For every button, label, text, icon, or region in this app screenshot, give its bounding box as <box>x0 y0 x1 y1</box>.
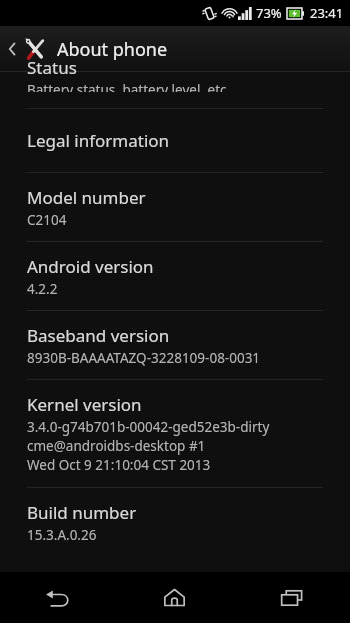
button[interactable]: Model number <box>0 173 350 241</box>
staticText: 15.3.A.0.26 <box>27 526 97 544</box>
other: Signal <box>238 7 252 20</box>
staticText: 3.4.0-g74b701b-00042-ged52e3b-dirty <box>27 418 270 436</box>
button[interactable]: Up, About phone <box>0 26 350 72</box>
button[interactable]: Back <box>0 572 116 623</box>
staticText: Kernel version <box>27 393 142 416</box>
button[interactable]: Kernel version <box>0 380 350 487</box>
button[interactable]: Status <box>0 72 350 108</box>
staticText: Battery status, battery level, etc. <box>27 81 231 92</box>
other: Wi-Fi <box>222 6 237 20</box>
other: Battery charging <box>287 8 304 19</box>
staticText: Wed Oct 9 21:10:04 CST 2013 <box>27 456 211 474</box>
staticText: About phone <box>57 37 168 62</box>
staticText: Status <box>27 56 77 79</box>
staticText: C2104 <box>27 211 67 229</box>
button[interactable]: Baseband version <box>0 311 350 379</box>
staticText: 23:41 <box>310 4 344 22</box>
staticText: Android version <box>27 255 154 278</box>
staticText: 8930B-BAAAATAZQ-3228109-08-0031 <box>27 349 261 367</box>
staticText: 4.2.2 <box>27 280 58 298</box>
staticText: Baseband version <box>27 324 170 347</box>
button[interactable]: Legal information <box>0 109 350 172</box>
button[interactable]: Build number <box>0 488 350 556</box>
staticText: Legal information <box>27 129 170 152</box>
staticText: Model number <box>27 186 146 209</box>
staticText: 73% <box>256 4 282 22</box>
staticText: Build number <box>27 501 137 524</box>
button[interactable]: Android version <box>0 242 350 310</box>
other: Vibrate <box>202 6 217 21</box>
staticText: cme@androidbs-desktop #1 <box>27 437 206 455</box>
button[interactable]: Recent apps <box>233 572 350 623</box>
button[interactable]: Home <box>116 572 233 623</box>
